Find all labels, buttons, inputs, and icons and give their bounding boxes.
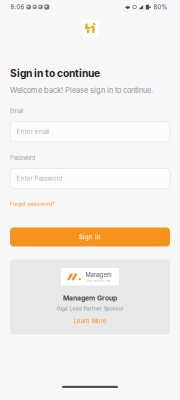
staticText: Sign In (79, 233, 101, 241)
staticText: Giga Lead Partner Sponsor (56, 305, 123, 312)
staticText: Creating value beyond mining (85, 280, 110, 282)
staticText: Managem Group (63, 294, 117, 302)
staticText: 80% (153, 3, 167, 11)
staticText: Enter email (16, 128, 48, 135)
staticText: Enter Password (16, 175, 62, 182)
staticText: 8:06 (10, 3, 24, 11)
staticText: Learn More (74, 317, 106, 325)
staticText: Welcome back! Please sign in to continue… (10, 86, 153, 95)
staticText: Sign in to continue (10, 67, 100, 79)
staticText: Managem (85, 271, 111, 278)
button[interactable]: Forgot password? (10, 200, 55, 207)
button[interactable]: Learn More (74, 317, 106, 325)
staticText: Password (10, 154, 35, 161)
staticText: Forgot password? (10, 200, 55, 207)
button[interactable]: Sign In (10, 227, 170, 246)
staticText: Email (10, 108, 23, 115)
